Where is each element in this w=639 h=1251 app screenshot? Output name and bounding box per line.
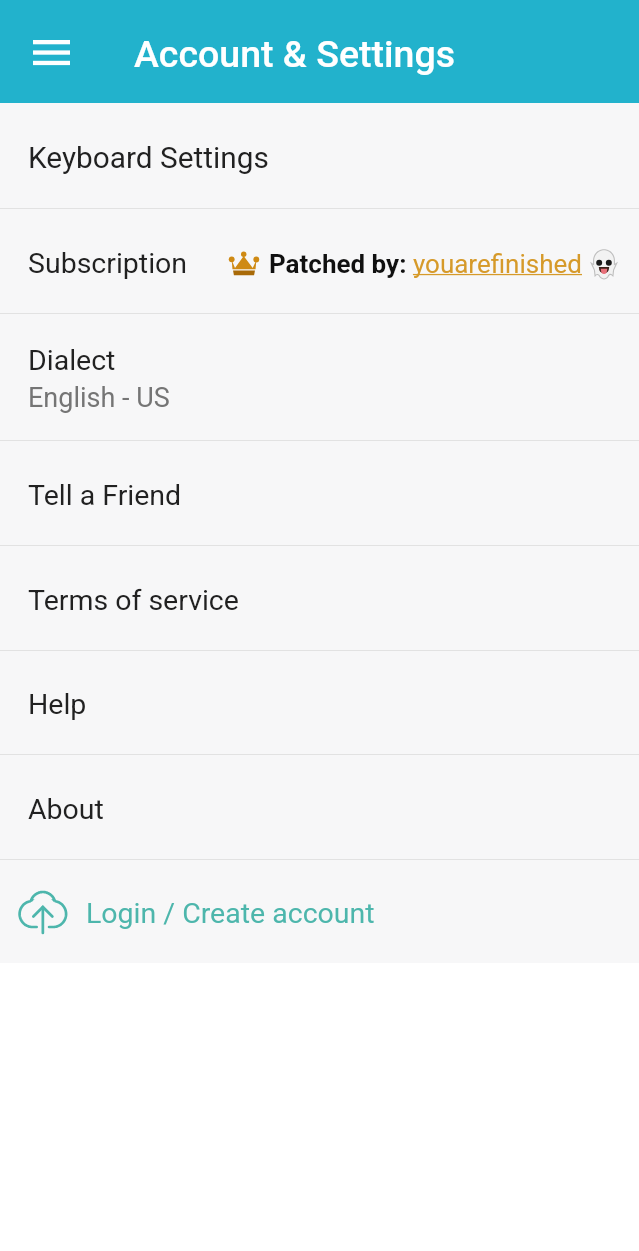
button[interactable]: Help <box>0 651 639 754</box>
staticText: Dialect <box>28 344 116 377</box>
button[interactable]: Terms of service <box>0 546 639 650</box>
button[interactable]: Keyboard Settings <box>0 103 639 208</box>
button[interactable]: Subscription <box>0 209 639 313</box>
staticText: Account & Settings <box>134 32 455 76</box>
staticText: Patched by: youarefinished <box>269 249 582 279</box>
button[interactable]: Dialect <box>0 314 639 440</box>
staticText: Subscription <box>28 247 188 280</box>
staticText: English - US <box>28 382 170 414</box>
button[interactable]: About <box>0 755 639 859</box>
staticText: Help <box>28 688 87 721</box>
staticText: Login / Create account <box>86 897 375 930</box>
staticText: About <box>28 793 104 826</box>
button[interactable]: Open navigation menu <box>9 10 93 94</box>
staticText: Terms of service <box>28 584 239 617</box>
staticText: Tell a Friend <box>28 479 182 512</box>
button[interactable]: Tell a Friend <box>0 441 639 545</box>
button[interactable]: Login / Create account <box>0 860 639 963</box>
staticText: Keyboard Settings <box>28 140 269 175</box>
